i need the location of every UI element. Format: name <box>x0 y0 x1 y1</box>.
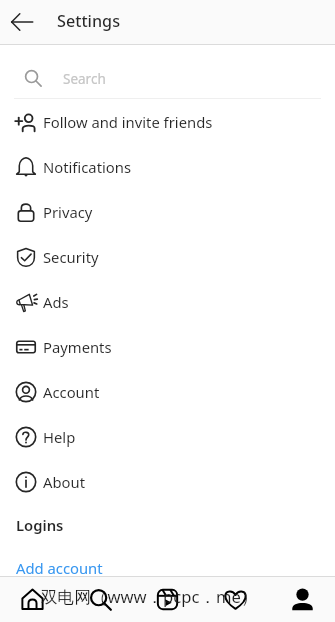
button[interactable]: Account <box>0 369 335 414</box>
button[interactable]: Notifications <box>0 144 335 189</box>
staticText: Add account <box>16 558 103 576</box>
staticText: Ads <box>43 292 69 312</box>
button[interactable]: Add account <box>0 548 335 576</box>
button[interactable]: Payments <box>0 324 335 369</box>
staticText: Payments <box>43 337 112 357</box>
staticText: Privacy <box>43 202 93 222</box>
button[interactable]: Security <box>0 234 335 279</box>
button[interactable]: Help <box>0 414 335 459</box>
staticText: Security <box>43 247 99 267</box>
staticText: Help <box>43 427 76 447</box>
staticText: Settings <box>57 10 121 32</box>
button[interactable]: Search <box>78 577 123 622</box>
button[interactable]: Back <box>0 0 44 44</box>
button[interactable]: Home <box>10 577 55 622</box>
staticText: Search <box>63 70 106 88</box>
staticText: Account <box>43 382 100 402</box>
staticText: Logins <box>16 515 64 535</box>
staticText: About <box>43 472 85 492</box>
button[interactable]: Ads <box>0 279 335 324</box>
staticText: Follow and invite friends <box>43 112 213 132</box>
staticText: 双电网（www．pcpc．me） <box>41 585 258 608</box>
button[interactable]: Reels <box>145 577 190 622</box>
button[interactable]: Activity <box>213 577 258 622</box>
button[interactable]: Privacy <box>0 189 335 234</box>
button[interactable]: About <box>0 459 335 504</box>
button[interactable]: Profile <box>280 577 325 622</box>
staticText: Notifications <box>43 157 132 177</box>
button[interactable]: Follow and invite friends <box>0 99 335 144</box>
